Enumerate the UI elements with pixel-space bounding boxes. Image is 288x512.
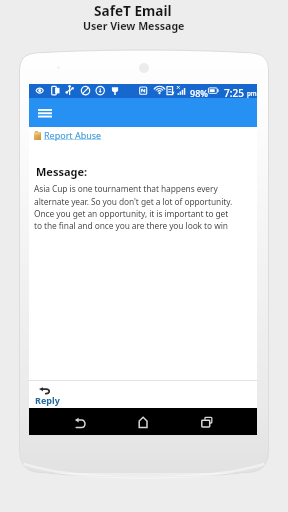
staticText: User View Message [83,19,185,33]
button[interactable]: Report Abuse [34,129,102,141]
staticText: Reply [35,394,60,406]
staticText: 7:25 [224,86,244,100]
staticText: Report Abuse [44,129,102,141]
button[interactable]: Back [69,409,94,434]
staticText: 98% [190,87,208,99]
button[interactable]: Reply [29,381,257,408]
button[interactable]: Home [134,409,159,434]
staticText: Message: [36,164,88,179]
staticText: Asia Cup is one tournament that happens … [34,183,235,231]
staticText: pm [247,89,257,97]
staticText: SafeT Email [94,1,172,18]
button[interactable]: Recent apps [197,409,222,434]
button[interactable]: Menu [34,102,55,123]
